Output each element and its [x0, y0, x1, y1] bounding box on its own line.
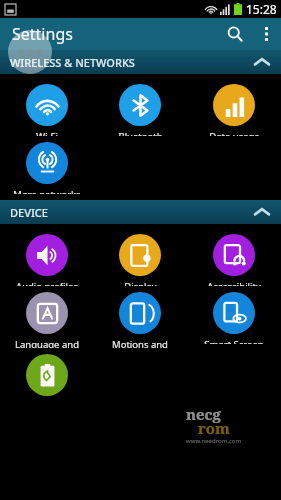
button[interactable]: WIRELESS & NETWORKS [0, 50, 281, 74]
button[interactable]: Data usage [187, 78, 281, 136]
button[interactable]: Search [219, 18, 251, 50]
staticText: 15:28 [246, 1, 277, 17]
button[interactable]: Motions and gestures [93, 286, 187, 348]
staticText: www.needrom.com [186, 437, 242, 445]
button[interactable]: More options [251, 19, 281, 49]
staticText: WIRELESS & NETWORKS [10, 55, 135, 70]
staticText: Language and input [15, 338, 79, 348]
button[interactable]: Smart Screen [187, 286, 281, 344]
staticText: Bluetooth [118, 130, 163, 136]
staticText: Motions and gestures [112, 338, 168, 348]
button[interactable]: Display [93, 228, 187, 286]
staticText: Data usage [209, 130, 260, 136]
button[interactable]: Audio profiles [0, 228, 93, 286]
button[interactable]: More networks [0, 136, 93, 194]
staticText: Display [124, 280, 157, 286]
button[interactable]: Bluetooth [93, 78, 187, 136]
staticText: DEVICE [10, 205, 48, 220]
staticText: Audio profiles [16, 280, 78, 286]
button[interactable]: Power saving [0, 348, 93, 406]
staticText: Settings [12, 23, 73, 45]
staticText: More networks [13, 188, 81, 194]
staticText: rom [198, 418, 230, 438]
staticText: Wi-Fi [36, 130, 58, 136]
button[interactable]: Language and input [0, 286, 93, 348]
button[interactable]: Wi-Fi [0, 78, 93, 136]
staticText: necg [186, 404, 221, 424]
button[interactable]: DEVICE [0, 200, 281, 224]
staticText: Accessibility [207, 280, 261, 286]
button[interactable]: Accessibility [187, 228, 281, 286]
staticText: Smart Screen [204, 338, 264, 344]
